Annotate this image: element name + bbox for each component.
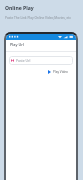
staticText: Play Url xyxy=(10,42,24,47)
staticText: Play Video xyxy=(53,70,68,74)
staticText: Online Play xyxy=(5,5,34,12)
button[interactable]: Paste Url xyxy=(9,56,73,65)
staticText: Paste The Link Play Online Video,Movies,… xyxy=(5,16,72,20)
button[interactable]: Play Video xyxy=(46,68,70,76)
button[interactable]: Play Url xyxy=(6,40,76,51)
staticText: Paste Url xyxy=(16,58,31,63)
